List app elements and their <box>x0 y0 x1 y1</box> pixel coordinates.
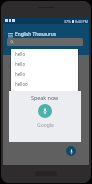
button[interactable]: Open navigation menu <box>4 29 16 41</box>
staticText: 37% <box>64 19 71 24</box>
button[interactable]: helloo <box>11 79 78 89</box>
staticText: 8:43 PM <box>75 19 88 24</box>
button[interactable]: Voice search <box>66 146 76 156</box>
button[interactable]: hello <box>11 59 78 69</box>
staticText: hello <box>15 61 26 67</box>
staticText: hello <box>15 71 26 77</box>
button[interactable]: hello <box>11 69 78 79</box>
staticText: hello <box>15 51 26 57</box>
button[interactable]: Microphone <box>38 104 52 118</box>
button[interactable]: hello <box>11 49 78 59</box>
staticText: English Thesaurus <box>15 31 57 38</box>
button[interactable] <box>7 38 83 46</box>
staticText: Google <box>37 122 54 129</box>
staticText: helloo <box>15 81 28 87</box>
staticText: Speak now <box>31 94 59 101</box>
